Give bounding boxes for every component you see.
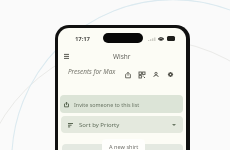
staticText: Wishr bbox=[113, 52, 131, 61]
button[interactable]: Share bbox=[121, 68, 135, 81]
button[interactable]: Settings bbox=[163, 68, 177, 81]
staticText: 17:17 bbox=[75, 35, 90, 43]
staticText: Sort by Priorty bbox=[79, 121, 120, 129]
button[interactable]: Sort by Priorty bbox=[61, 116, 183, 133]
button[interactable]: Scan QR code bbox=[135, 68, 149, 81]
button[interactable]: A new shirt bbox=[102, 139, 145, 150]
staticText: Presents for Max bbox=[68, 67, 116, 76]
button[interactable] bbox=[62, 144, 183, 150]
button[interactable]: Menu bbox=[60, 50, 72, 62]
staticText: Invite someone to this list bbox=[74, 101, 140, 108]
button[interactable]: Members bbox=[149, 68, 163, 81]
button[interactable]: Invite someone to this list bbox=[60, 95, 183, 113]
staticText: A new shirt bbox=[109, 143, 139, 150]
